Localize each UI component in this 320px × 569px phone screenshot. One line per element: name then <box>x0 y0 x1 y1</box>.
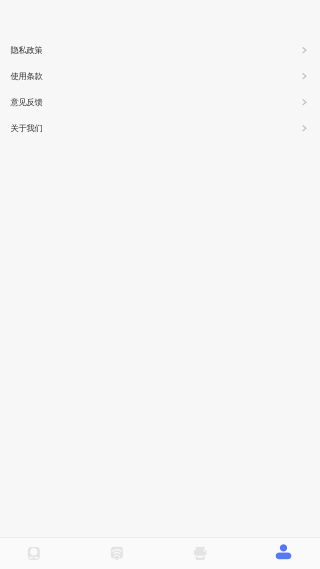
button[interactable]: 打印 <box>123 538 206 569</box>
button[interactable]: 配网 <box>40 538 123 569</box>
button[interactable]: 隐私政策 <box>0 37 320 63</box>
staticText: 隐私政策 <box>10 45 42 55</box>
button[interactable]: 使用条款 <box>0 63 320 89</box>
button[interactable]: 设备 <box>0 538 40 569</box>
button[interactable]: 关于我们 <box>0 115 320 141</box>
button[interactable]: 我的 <box>206 538 291 569</box>
staticText: 使用条款 <box>10 71 42 81</box>
staticText: 意见反馈 <box>10 97 42 107</box>
staticText: 关于我们 <box>10 123 42 133</box>
button[interactable]: 意见反馈 <box>0 89 320 115</box>
